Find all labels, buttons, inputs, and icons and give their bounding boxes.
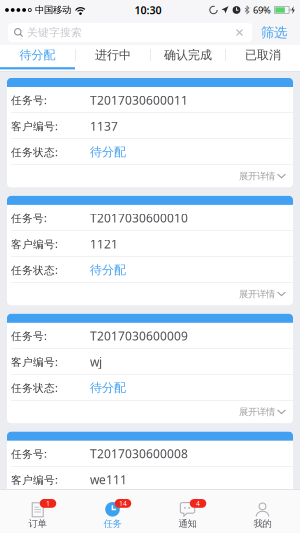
- staticText: 订单: [28, 518, 46, 529]
- staticText: 筛选: [261, 24, 287, 41]
- staticText: 任务号:: [11, 329, 47, 343]
- button[interactable]: 任务号:: [7, 196, 293, 305]
- staticText: 4: [196, 499, 200, 508]
- button[interactable]: 筛选: [261, 24, 287, 41]
- staticText: 客户编号:: [11, 473, 58, 487]
- staticText: 客户编号:: [11, 237, 58, 251]
- staticText: 任务号:: [11, 447, 47, 461]
- staticText: T2017030600008: [90, 446, 188, 462]
- staticText: 10:30: [134, 3, 161, 17]
- staticText: 展开详情: [239, 524, 275, 533]
- staticText: 1: [46, 499, 50, 508]
- staticText: 待分配: [19, 48, 55, 62]
- button[interactable]: 我的: [225, 489, 300, 533]
- staticText: wj: [90, 354, 102, 370]
- staticText: 进行中: [95, 48, 131, 62]
- staticText: 通知: [178, 518, 196, 529]
- button[interactable]: 确认完成: [151, 45, 225, 65]
- staticText: 69%: [253, 4, 271, 16]
- button[interactable]: 待分配: [0, 45, 75, 65]
- button[interactable]: 任务号:: [7, 432, 293, 533]
- button[interactable]: Clear: [235, 28, 244, 37]
- button[interactable]: 关键字搜索: [8, 23, 252, 42]
- button[interactable]: 任务: [75, 489, 150, 533]
- staticText: 任务状态:: [11, 145, 58, 159]
- staticText: we111: [90, 472, 127, 488]
- staticText: 我的: [253, 518, 271, 529]
- staticText: T2017030600011: [90, 92, 188, 108]
- staticText: 展开详情: [239, 406, 275, 418]
- staticText: 客户编号:: [11, 119, 58, 133]
- staticText: 任务: [103, 518, 121, 529]
- staticText: 待分配: [90, 380, 126, 395]
- staticText: T2017030600010: [90, 210, 188, 226]
- staticText: 客户编号:: [11, 355, 58, 369]
- staticText: 待分配: [90, 262, 126, 277]
- staticText: 1137: [90, 118, 118, 134]
- staticText: 14: [119, 499, 127, 508]
- staticText: 展开详情: [239, 170, 275, 182]
- staticText: 关键字搜索: [27, 26, 82, 39]
- staticText: 已取消: [245, 48, 281, 62]
- staticText: 待分配: [90, 145, 126, 159]
- staticText: T2017030600009: [90, 328, 188, 344]
- staticText: 中国移动: [35, 4, 71, 16]
- button[interactable]: 任务号:: [7, 78, 293, 187]
- button[interactable]: 已取消: [226, 45, 300, 65]
- staticText: 1121: [90, 236, 118, 252]
- staticText: 任务状态:: [11, 499, 58, 513]
- staticText: 任务号:: [11, 211, 47, 225]
- staticText: 任务状态:: [11, 381, 58, 395]
- staticText: 任务状态:: [11, 263, 58, 277]
- button[interactable]: 任务号:: [7, 314, 293, 423]
- staticText: 待分配: [90, 498, 126, 513]
- button[interactable]: 通知: [150, 489, 225, 533]
- staticText: 展开详情: [239, 288, 275, 300]
- button[interactable]: 订单: [0, 489, 75, 533]
- button[interactable]: 进行中: [76, 45, 150, 65]
- staticText: 确认完成: [164, 48, 212, 62]
- staticText: 任务号:: [11, 93, 47, 107]
